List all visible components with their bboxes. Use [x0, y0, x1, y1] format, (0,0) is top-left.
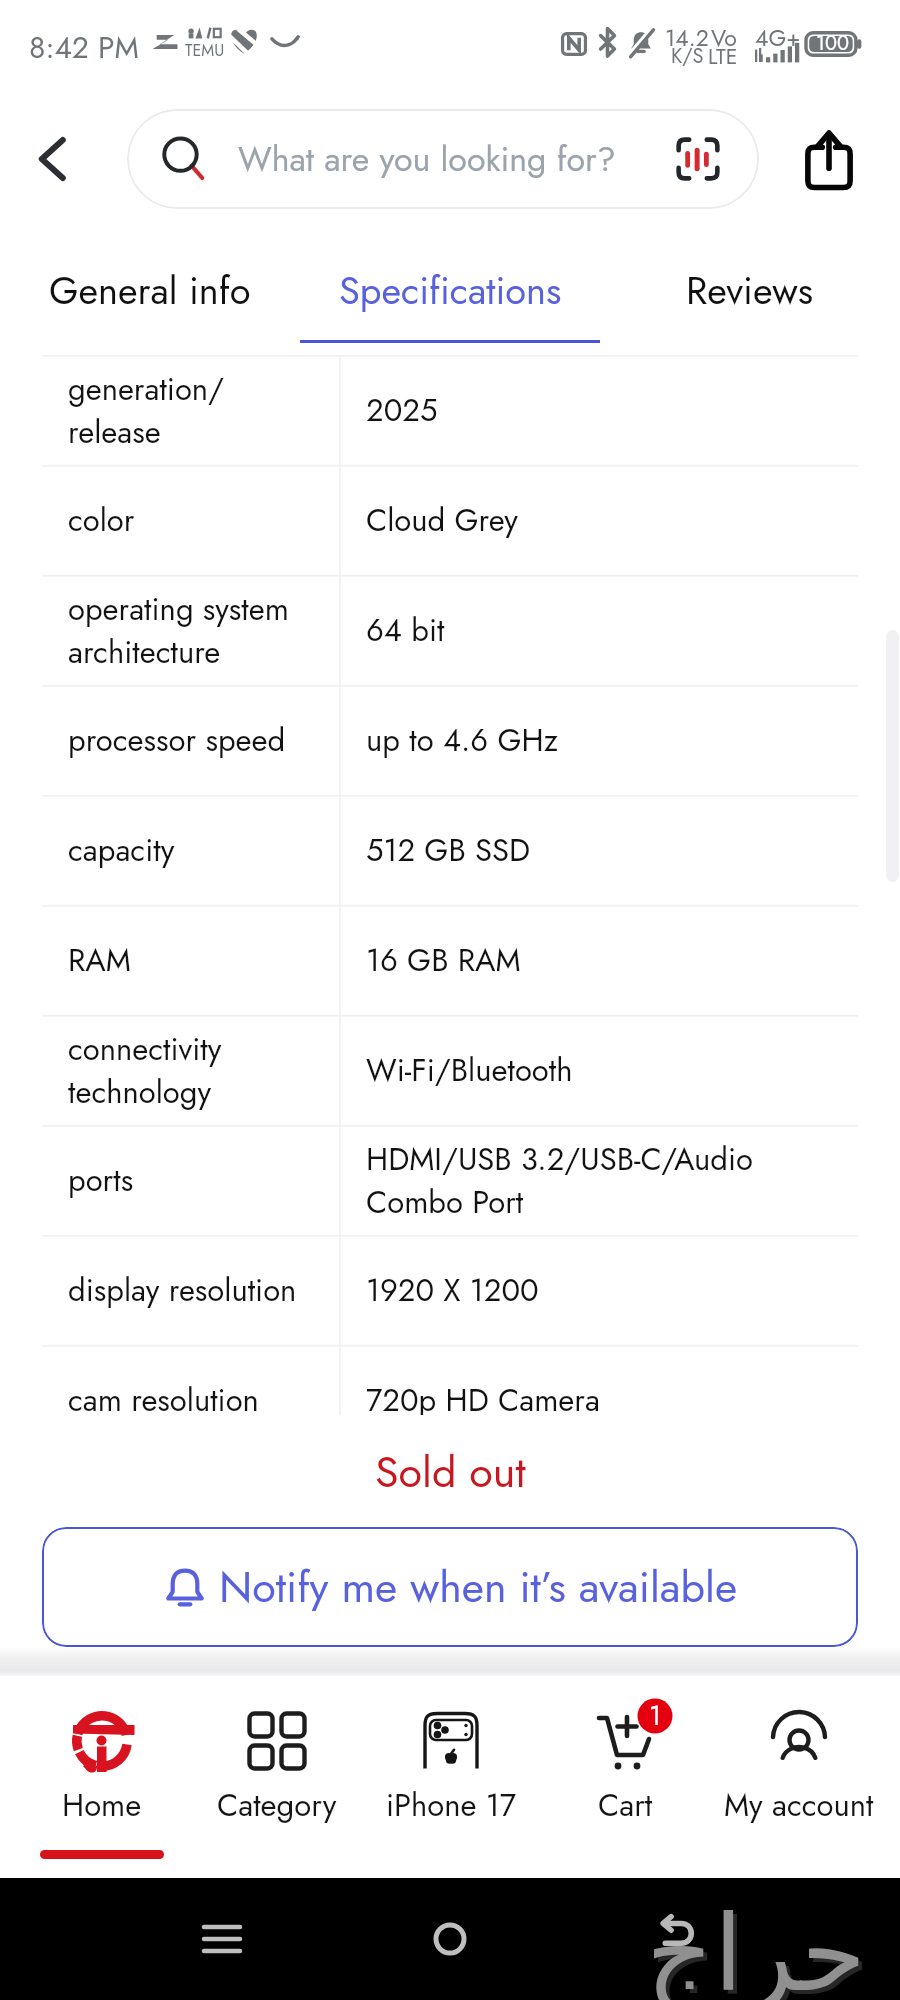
- button[interactable]: ports: [42, 1125, 858, 1235]
- button[interactable]: generation/ release: [42, 355, 858, 465]
- staticText: What are you looking for?: [238, 135, 616, 184]
- staticText: Home: [62, 1783, 142, 1828]
- staticText: RAM: [68, 938, 131, 983]
- staticText: 14.2: [665, 21, 709, 54]
- button[interactable]: operating system architecture: [42, 575, 858, 685]
- staticText: display resolution: [68, 1268, 297, 1313]
- button[interactable]: RAM: [42, 905, 858, 1015]
- staticText: 1920 X 1200: [366, 1268, 539, 1313]
- staticText: Sold out: [375, 1441, 526, 1503]
- staticText: حراج: [646, 1893, 866, 2000]
- staticText: ports: [68, 1158, 134, 1203]
- staticText: up to 4.6 GHz: [366, 718, 558, 763]
- staticText: Wi-Fi/Bluetooth: [366, 1048, 573, 1093]
- button[interactable]: Recent apps: [192, 1909, 252, 1969]
- button[interactable]: Reviews: [600, 238, 900, 356]
- staticText: 16 GB RAM: [366, 938, 521, 983]
- staticText: HDMI/USB 3.2/USB-C/Audio Combo Port: [366, 1137, 753, 1224]
- staticText: General info: [49, 263, 251, 318]
- staticText: iPhone 17: [386, 1783, 517, 1828]
- button[interactable]: 1: [538, 1676, 712, 1878]
- staticText: generation/ release: [68, 367, 225, 454]
- button[interactable]: Share: [791, 121, 867, 197]
- button[interactable]: iPhone 17: [364, 1676, 538, 1878]
- button[interactable]: Category: [189, 1676, 364, 1878]
- staticText: 512 GB SSD: [366, 828, 531, 873]
- staticText: 720p HD Camera: [366, 1378, 600, 1423]
- staticText: 2025: [366, 388, 438, 433]
- staticText: 4G+: [755, 21, 801, 54]
- staticText: Vo: [711, 21, 737, 54]
- staticText: 1: [649, 1696, 662, 1735]
- button[interactable]: My account: [712, 1676, 886, 1878]
- staticText: capacity: [68, 828, 175, 873]
- staticText: 64 bit: [366, 608, 445, 653]
- button[interactable]: Home: [14, 1676, 189, 1878]
- staticText: My account: [724, 1783, 874, 1828]
- staticText: color: [68, 498, 135, 543]
- button[interactable]: General info: [0, 238, 300, 356]
- staticText: connectivity technology: [68, 1027, 222, 1114]
- button[interactable]: Back: [16, 123, 88, 195]
- button[interactable]: Back: [648, 1902, 706, 1960]
- staticText: حراج: [650, 1897, 870, 2000]
- button[interactable]: Notify me when it’s available: [42, 1527, 858, 1647]
- staticText: 100: [816, 29, 849, 58]
- button[interactable]: What are you looking for?: [127, 109, 759, 209]
- staticText: operating system architecture: [68, 587, 289, 674]
- staticText: Specifications: [339, 263, 562, 318]
- staticText: 8:42 PM: [29, 26, 139, 69]
- button[interactable]: Home: [420, 1909, 480, 1969]
- button[interactable]: processor speed: [42, 685, 858, 795]
- staticText: Notify me when it’s available: [219, 1556, 738, 1618]
- staticText: Cart: [598, 1783, 653, 1828]
- staticText: Category: [217, 1783, 337, 1828]
- staticText: cam resolution: [68, 1378, 259, 1423]
- button[interactable]: Specifications: [300, 238, 600, 356]
- button[interactable]: color: [42, 465, 858, 575]
- staticText: Cloud Grey: [366, 498, 518, 543]
- button[interactable]: cam resolution: [42, 1345, 858, 1455]
- button[interactable]: display resolution: [42, 1235, 858, 1345]
- staticText: processor speed: [68, 718, 286, 763]
- button[interactable]: connectivity technology: [42, 1015, 858, 1125]
- button[interactable]: capacity: [42, 795, 858, 905]
- staticText: K/S: [671, 42, 704, 71]
- staticText: TEMU: [185, 39, 225, 62]
- staticText: Reviews: [686, 263, 814, 318]
- staticText: LTE: [708, 42, 738, 72]
